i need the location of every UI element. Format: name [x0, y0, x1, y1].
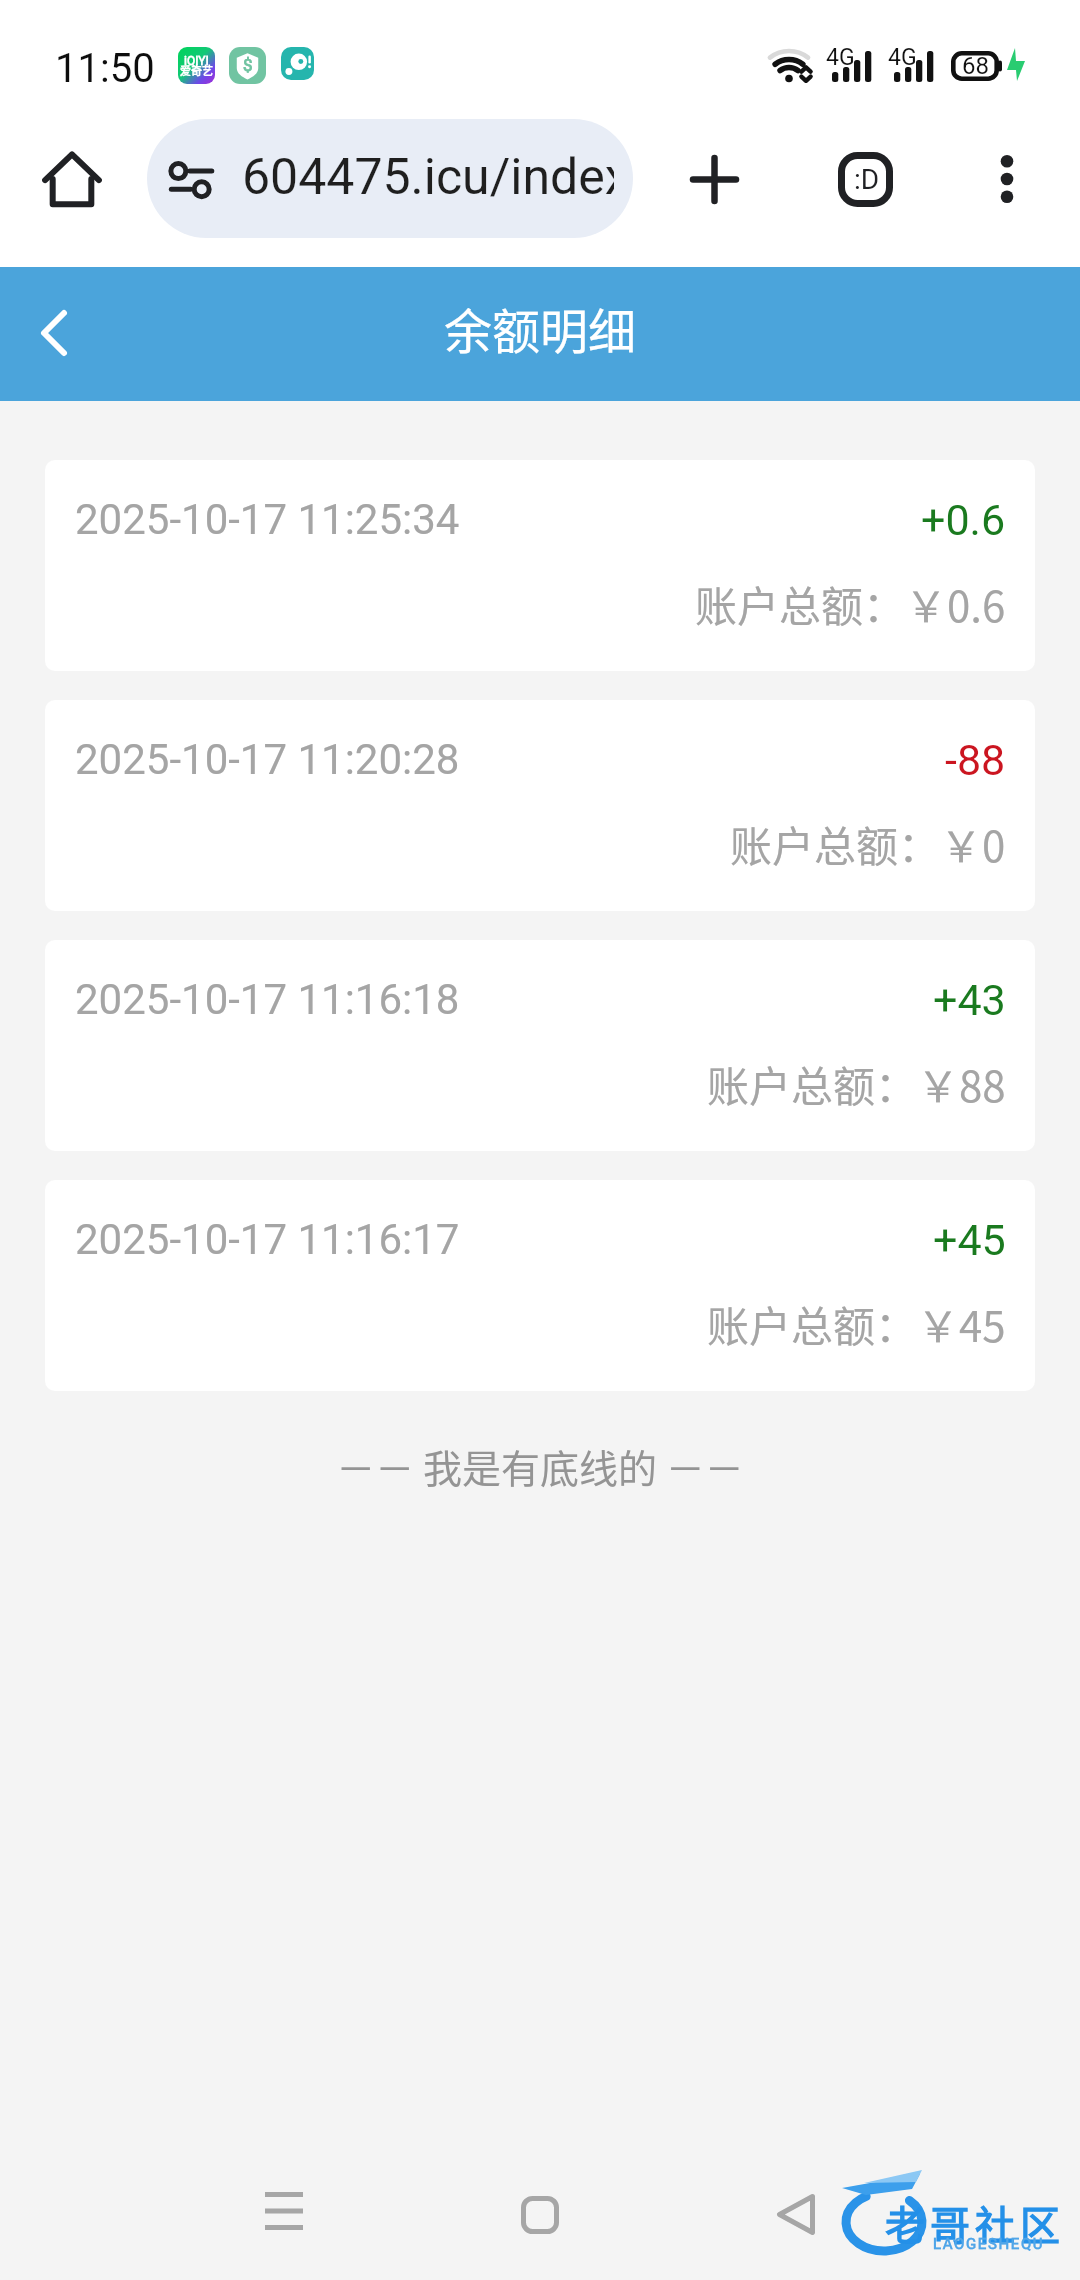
staticText: 爱奇艺	[180, 62, 213, 78]
other: Battery 68 percent	[951, 51, 999, 81]
staticText: :D	[854, 163, 880, 196]
button[interactable]: More options	[965, 137, 1049, 221]
staticText: 4G	[826, 44, 855, 71]
staticText: iQIYI	[184, 54, 209, 68]
other: Wi-Fi	[766, 44, 816, 86]
button[interactable]: Back	[716, 2176, 876, 2252]
button[interactable]: Address bar	[147, 119, 633, 238]
staticText: 账户总额：￥0	[730, 813, 1006, 874]
staticText: 账户总额：￥45	[707, 1293, 1006, 1354]
staticText: 账户总额：￥0.6	[695, 573, 1006, 634]
button[interactable]: 2025-10-17 11:16:18	[45, 940, 1035, 1151]
staticText: LAOGESHEQU	[933, 2235, 1045, 2253]
button[interactable]: Back	[4, 283, 104, 383]
staticText: 4G	[888, 44, 917, 71]
staticText: 68	[962, 52, 989, 80]
staticText: -88	[945, 735, 1006, 785]
staticText: +45	[933, 1215, 1006, 1265]
button[interactable]: 2025-10-17 11:25:34	[45, 460, 1035, 671]
staticText: 11:50	[55, 45, 155, 92]
staticText: －－ 我是有底线的 －－	[0, 1438, 1080, 1494]
button[interactable]: Home	[460, 2177, 620, 2253]
staticText: +0.6	[921, 495, 1006, 545]
staticText: $	[243, 55, 253, 75]
staticText: 老哥社区	[885, 2194, 1065, 2252]
button[interactable]: Recent apps	[204, 2173, 364, 2249]
staticText: +43	[933, 975, 1006, 1025]
staticText: 604475.icu/index	[242, 148, 614, 207]
button[interactable]: 2025-10-17 11:16:17	[45, 1180, 1035, 1391]
staticText: 2025-10-17 11:25:34	[75, 495, 460, 544]
staticText: 2025-10-17 11:16:18	[75, 975, 460, 1024]
button[interactable]: 2025-10-17 11:20:28	[45, 700, 1035, 911]
button[interactable]: New tab	[672, 137, 756, 221]
button[interactable]: Home	[30, 137, 114, 221]
staticText: 2025-10-17 11:16:17	[75, 1215, 460, 1264]
staticText: 余额明细	[444, 293, 637, 363]
staticText: 账户总额：￥88	[707, 1053, 1006, 1114]
button[interactable]: Tabs	[823, 137, 907, 221]
staticText: 2025-10-17 11:20:28	[75, 735, 460, 784]
